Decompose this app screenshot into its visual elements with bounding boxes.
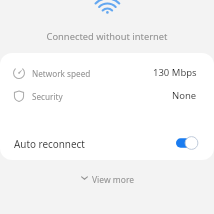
staticText: 130 Mbps (153, 66, 197, 79)
staticText: Security (32, 91, 63, 102)
staticText: None (172, 89, 197, 102)
button[interactable]: Network speed (0, 62, 214, 84)
staticText: Auto reconnect (14, 137, 85, 150)
button[interactable]: Auto reconnect toggle (176, 136, 198, 150)
button[interactable]: Security (0, 85, 214, 107)
button[interactable]: View more (0, 172, 214, 186)
staticText: Network speed (32, 68, 91, 79)
button[interactable]: Auto reconnect (0, 130, 214, 156)
staticText: Connected without internet (0, 30, 214, 43)
staticText: View more (92, 174, 135, 186)
